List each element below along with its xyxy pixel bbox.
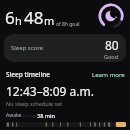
- staticText: Sleep timeline: [6, 70, 92, 79]
- button[interactable]: Sleep stages timeline: [6, 121, 126, 128]
- staticText: 12:43–8:09 a.m.: [6, 83, 94, 99]
- staticText: Good: [104, 53, 119, 60]
- button[interactable]: Learn more: [92, 71, 125, 79]
- staticText: No sleep schedule set: [6, 100, 63, 107]
- button[interactable]: Sleep goal progress: [98, 3, 124, 29]
- staticText: Awake: [6, 112, 22, 119]
- staticText: 38 min: [37, 112, 55, 119]
- staticText: 80: [105, 37, 119, 53]
- staticText: 6: [5, 6, 15, 29]
- staticText: of 8h goal: [56, 21, 80, 28]
- staticText: m: [44, 13, 55, 28]
- staticText: Learn more: [92, 71, 125, 79]
- staticText: h: [15, 13, 22, 28]
- staticText: Sleep score: [11, 44, 104, 52]
- button[interactable]: Sleep score: [4, 34, 126, 62]
- staticText: 48: [24, 6, 44, 29]
